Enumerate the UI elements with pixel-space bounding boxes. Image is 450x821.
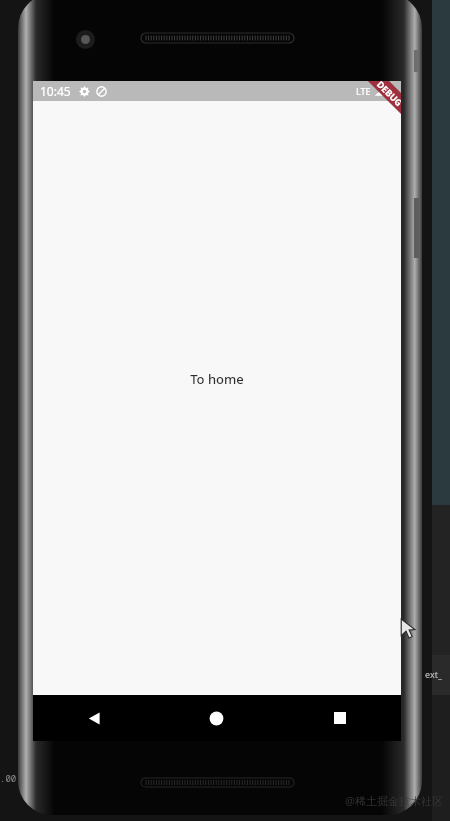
staticText: 10:45 (40, 83, 71, 99)
button[interactable]: Home (155, 695, 278, 741)
staticText: To home (190, 370, 244, 388)
staticText: .00 (0, 772, 17, 784)
button[interactable]: Recent apps (278, 695, 401, 741)
staticText: DEBUG (375, 81, 401, 108)
button[interactable]: To home (182, 366, 252, 392)
staticText: LTE (356, 85, 371, 97)
button[interactable]: Back (33, 695, 155, 741)
staticText: @稀土掘金技术社区 (345, 793, 443, 808)
staticText: ext_ (425, 668, 442, 680)
